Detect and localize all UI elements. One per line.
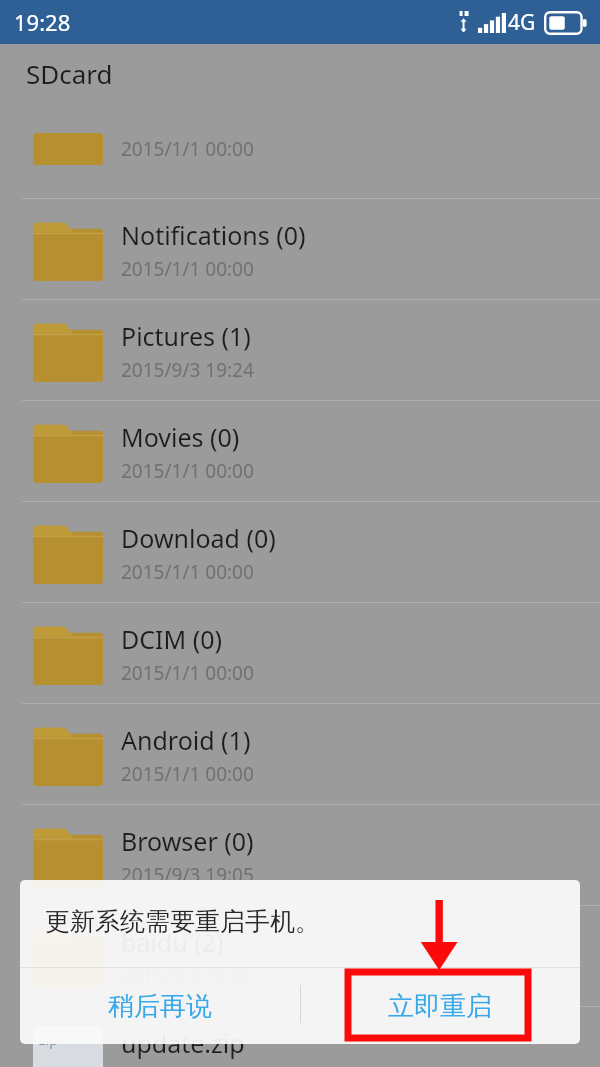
button[interactable]: zip: [0, 1007, 600, 1067]
staticText: Android (1): [121, 723, 251, 757]
button[interactable]: Browser (0): [0, 805, 600, 906]
button[interactable]: Android (1): [0, 704, 600, 805]
staticText: 4G: [508, 8, 536, 37]
button[interactable]: 稍后再说: [20, 968, 300, 1044]
staticText: 2015/9/3 19:24: [121, 357, 254, 383]
staticText: 2015/1/1 00:00: [121, 136, 254, 162]
staticText: 19:28: [14, 7, 71, 37]
staticText: 2015/1/1 00:00: [121, 761, 254, 787]
staticText: Browser (0): [121, 824, 254, 858]
button[interactable]: Notifications (0): [0, 199, 600, 300]
staticText: 更新系统需要重启手机。: [45, 906, 320, 937]
staticText: Pictures (1): [121, 319, 251, 353]
button[interactable]: baidu (2): [0, 906, 600, 1007]
staticText: DCIM (0): [121, 622, 223, 656]
staticText: 稍后再说: [108, 990, 212, 1023]
staticText: baidu (2): [121, 925, 224, 959]
staticText: Download (0): [121, 521, 276, 555]
staticText: 2015/9/3 19:05: [121, 862, 254, 888]
button[interactable]: DCIM (0): [0, 603, 600, 704]
other: Annotation arrow: [418, 900, 464, 970]
staticText: zip: [39, 1030, 58, 1049]
button[interactable]: Download (0): [0, 502, 600, 603]
staticText: 2015/1/1 00:00: [121, 660, 254, 686]
button[interactable]: Pictures (1): [0, 300, 600, 401]
staticText: 立即重启: [388, 990, 492, 1023]
staticText: 2015/1/1 00:00: [121, 256, 254, 282]
staticText: 2015/1/1 00:00: [121, 458, 254, 484]
button[interactable]: 立即重启: [300, 968, 580, 1044]
staticText: 2015/1/1 00:00: [121, 559, 254, 585]
staticText: Movies (0): [121, 420, 240, 454]
button[interactable]: Movies (0): [0, 401, 600, 502]
other: Annotation box: [345, 969, 531, 1041]
staticText: update.zip: [121, 1026, 245, 1060]
staticText: SDcard: [26, 56, 113, 91]
staticText: Notifications (0): [121, 218, 306, 252]
staticText: 2015/9/3 19:05: [121, 963, 254, 989]
button[interactable]: 2015/1/1 00:00: [0, 98, 600, 199]
